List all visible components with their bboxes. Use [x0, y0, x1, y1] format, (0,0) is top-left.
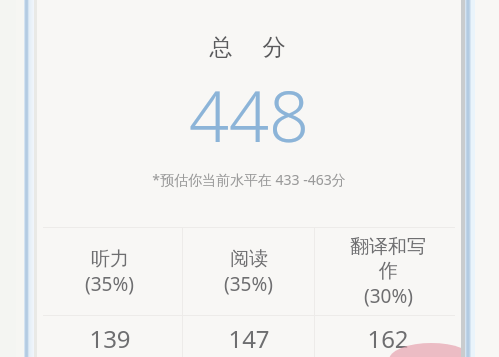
staticText: (35%): [224, 271, 273, 297]
staticText: 147: [228, 322, 270, 355]
staticText: (30%): [364, 283, 413, 309]
staticText: 139: [89, 322, 131, 355]
staticText: 448: [37, 67, 461, 162]
staticText: 翻译和写: [350, 235, 426, 259]
staticText: 162: [367, 322, 409, 355]
staticText: 总 分: [37, 30, 461, 61]
staticText: 阅读: [230, 247, 268, 271]
staticText: 作: [379, 259, 398, 283]
staticText: 听力: [91, 247, 129, 271]
staticText: *预估你当前水平在 433 -463分: [37, 170, 461, 189]
staticText: (35%): [85, 271, 134, 297]
